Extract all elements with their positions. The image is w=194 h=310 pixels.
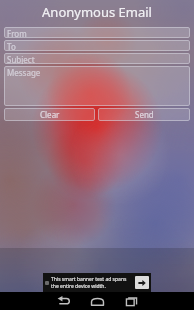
staticText: Send <box>135 109 154 120</box>
button[interactable]: Recent apps <box>114 292 148 310</box>
button[interactable]: Send <box>98 108 190 121</box>
button[interactable]: Subject <box>4 53 190 64</box>
button[interactable]: Message <box>4 66 190 106</box>
staticText: To <box>7 41 16 51</box>
button[interactable]: This smart banner text ad spans the enti… <box>43 273 151 292</box>
staticText: This smart banner text ad spans the enti… <box>51 276 133 289</box>
staticText: Subject <box>7 54 35 64</box>
button[interactable]: From <box>4 27 190 38</box>
staticText: Clear <box>40 109 60 120</box>
button[interactable]: Open ad <box>135 276 149 289</box>
button[interactable]: Home <box>80 292 114 310</box>
button[interactable]: Clear <box>4 108 95 121</box>
button[interactable]: Back <box>46 292 80 310</box>
staticText: Anonymous Email <box>4 3 190 21</box>
staticText: From <box>7 28 27 38</box>
staticText: Message <box>7 67 41 78</box>
button[interactable]: To <box>4 40 190 51</box>
